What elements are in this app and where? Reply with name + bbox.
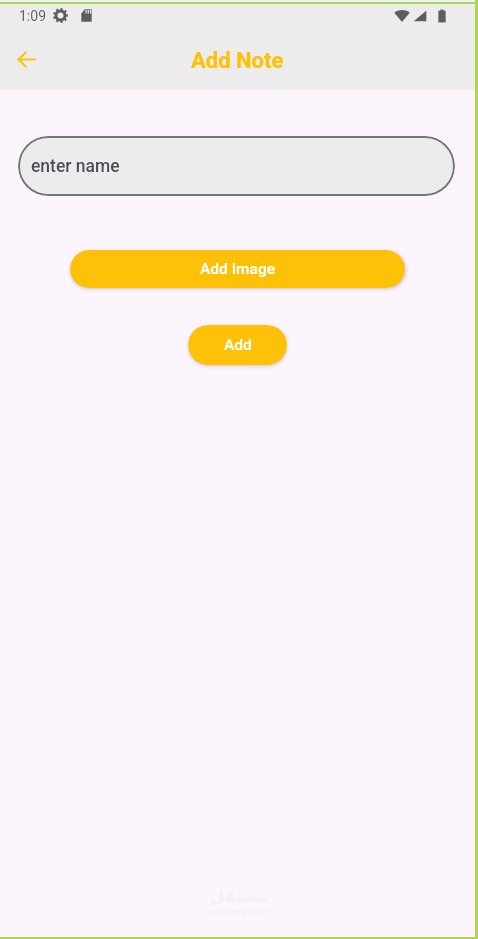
staticText: enter name: [31, 156, 120, 177]
staticText: 1:09: [19, 8, 46, 24]
staticText: Add Note: [191, 48, 284, 74]
button[interactable]: Add Image: [70, 250, 405, 288]
button[interactable]: Back: [10, 43, 43, 76]
button[interactable]: enter name: [18, 136, 455, 196]
staticText: Add Image: [200, 260, 276, 278]
staticText: Add: [224, 336, 252, 354]
button[interactable]: Add: [188, 325, 287, 365]
